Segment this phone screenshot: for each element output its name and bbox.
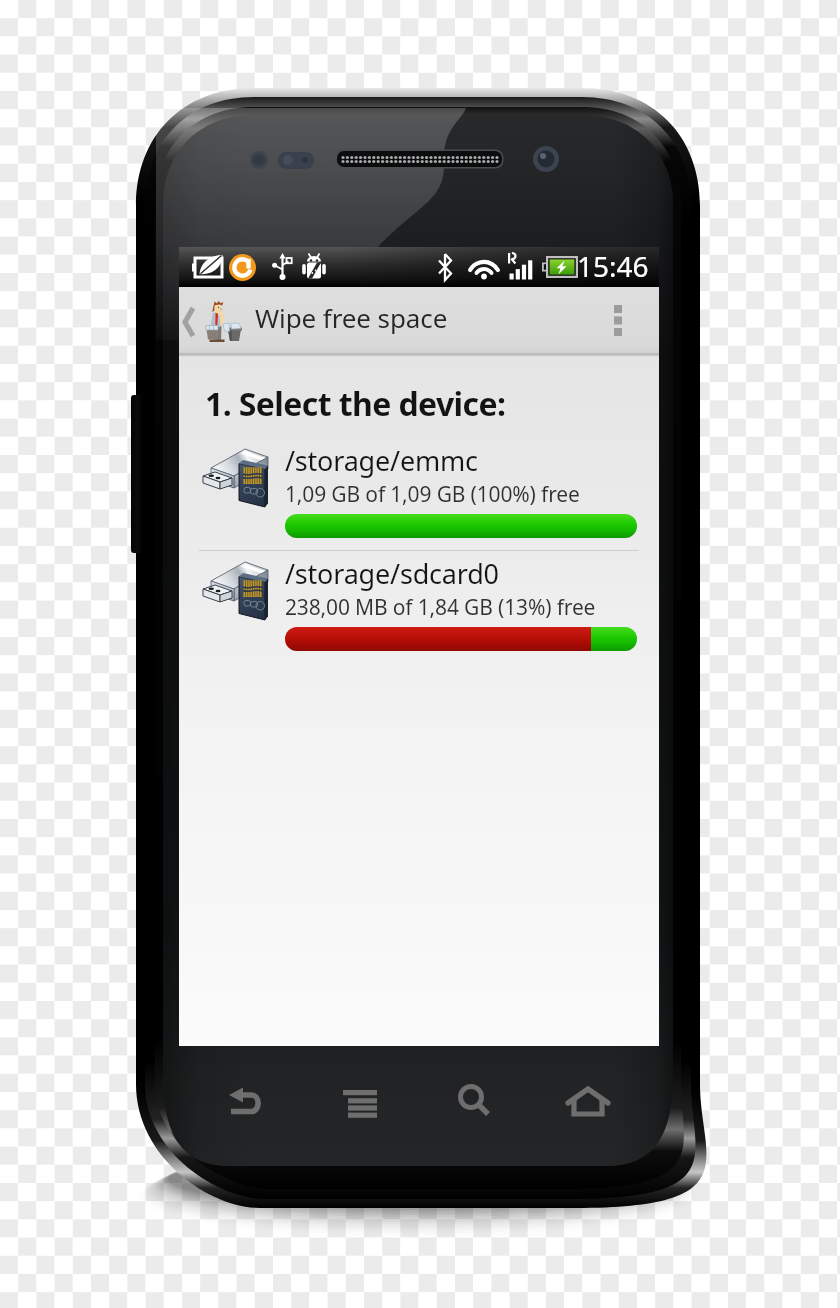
button[interactable]: Navigate up (179, 287, 243, 357)
button[interactable]: Menu (314, 1054, 410, 1148)
staticText: 1,09 GB of 1,09 GB (100%) free (285, 480, 580, 509)
button[interactable]: Home (540, 1054, 636, 1148)
staticText: 238,00 MB of 1,84 GB (13%) free (285, 593, 596, 622)
staticText: /storage/emmc (285, 442, 478, 479)
button[interactable]: Back (200, 1054, 296, 1148)
staticText: 1. Select the device: (205, 382, 506, 426)
button[interactable]: /storage/sdcard0 (179, 551, 659, 663)
staticText: Wipe free space (255, 300, 448, 335)
staticText: 15:46 (577, 247, 649, 285)
staticText: /storage/sdcard0 (285, 555, 499, 592)
button[interactable]: Search (428, 1054, 524, 1148)
button[interactable]: More options (605, 287, 659, 357)
button[interactable]: /storage/emmc (179, 438, 659, 550)
